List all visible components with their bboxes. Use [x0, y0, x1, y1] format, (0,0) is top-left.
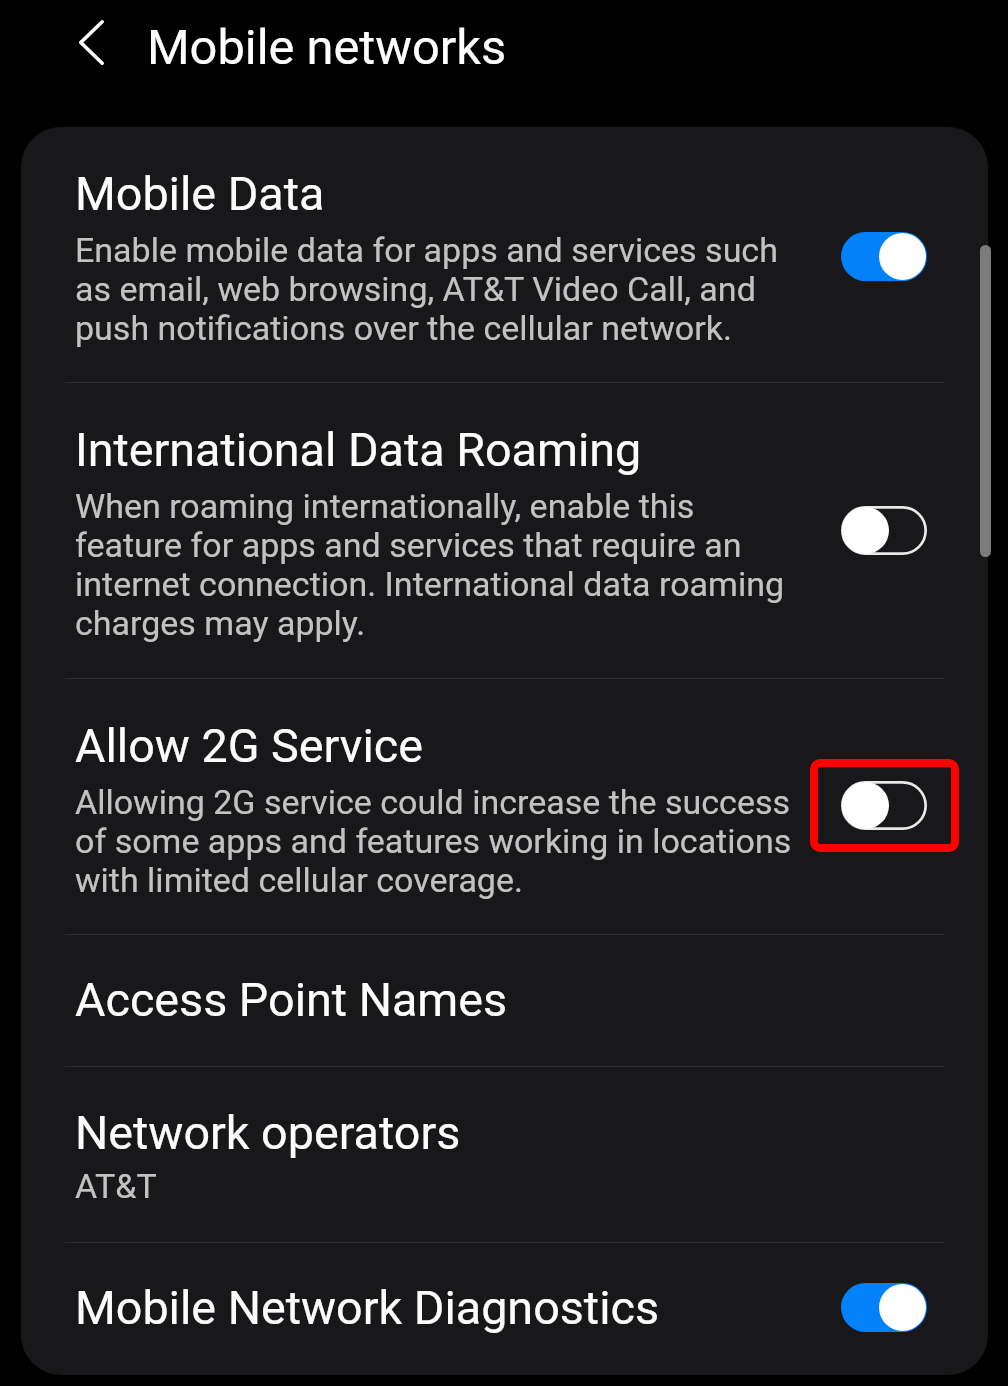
- button[interactable]: Mobile Network Diagnostics: [21, 1243, 988, 1375]
- button[interactable]: Turn on: [841, 781, 927, 830]
- button[interactable]: Access Point Names: [21, 935, 988, 1066]
- button[interactable]: Turn off: [841, 1283, 927, 1332]
- button[interactable]: Turn off: [841, 232, 927, 281]
- staticText: AT&T: [75, 1166, 157, 1206]
- staticText: Mobile Network Diagnostics: [75, 1281, 660, 1336]
- staticText: International Data Roaming: [75, 423, 642, 478]
- staticText: Allow 2G Service: [75, 719, 423, 774]
- staticText: Enable mobile data for apps and services…: [75, 230, 778, 348]
- button[interactable]: Mobile Data: [21, 127, 988, 382]
- button[interactable]: Navigate up: [62, 7, 120, 77]
- staticText: When roaming internationally, enable thi…: [75, 486, 785, 643]
- button[interactable]: International Data Roaming: [21, 383, 988, 678]
- button[interactable]: Network operators: [21, 1067, 988, 1242]
- staticText: Mobile networks: [147, 19, 507, 76]
- staticText: Network operators: [75, 1106, 461, 1161]
- staticText: Access Point Names: [75, 973, 508, 1028]
- staticText: Mobile Data: [75, 167, 325, 222]
- staticText: Allowing 2G service could increase the s…: [75, 782, 792, 900]
- button[interactable]: Allow 2G Service: [21, 679, 988, 934]
- button[interactable]: Turn on: [841, 506, 927, 555]
